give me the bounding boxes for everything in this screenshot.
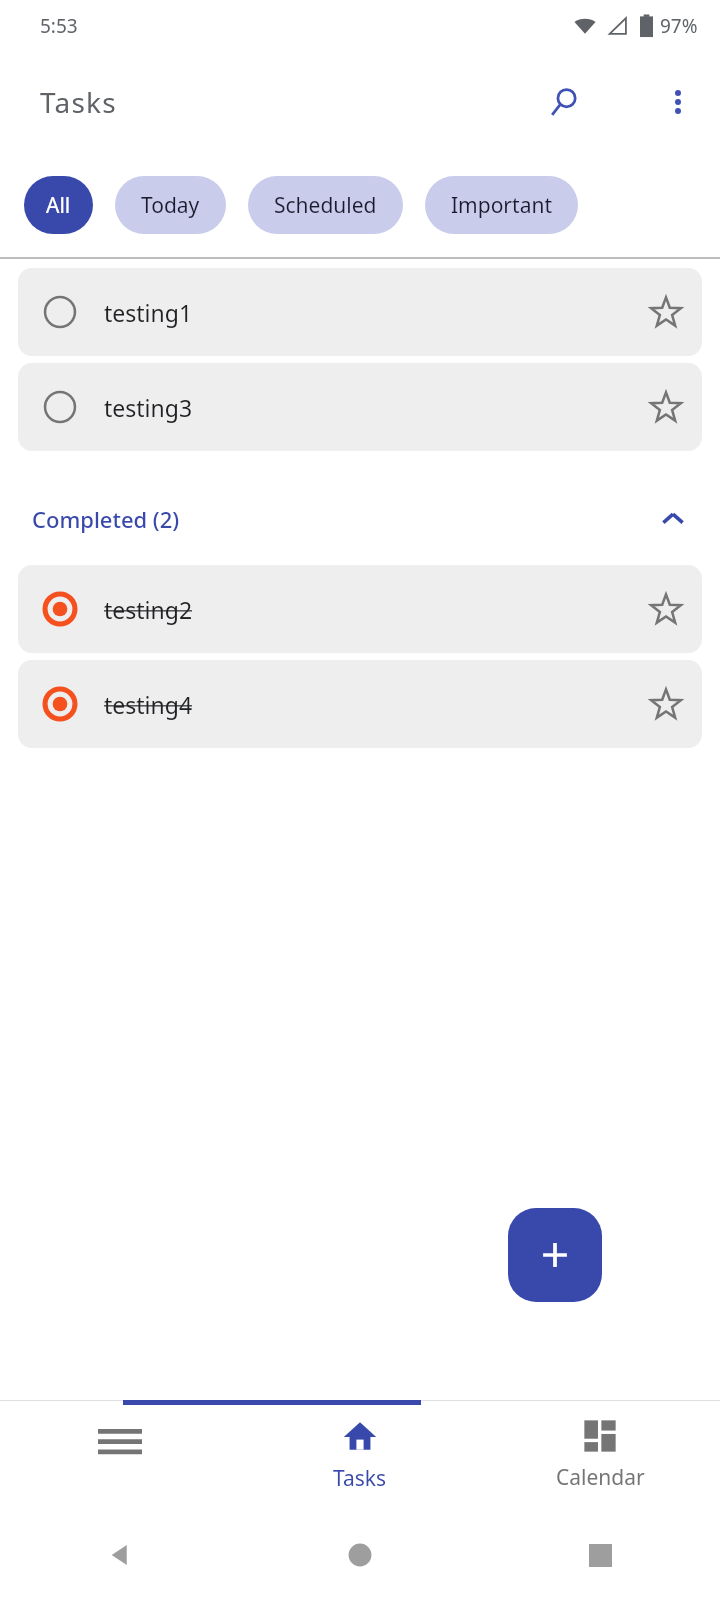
button[interactable]: Search: [536, 74, 592, 130]
button[interactable]: Mark complete: [18, 268, 702, 356]
staticText: Tasks: [40, 83, 117, 121]
button[interactable]: Scheduled: [248, 176, 403, 234]
button[interactable]: More options: [650, 74, 706, 130]
staticText: testing3: [104, 392, 638, 423]
staticText: Calendar: [556, 1463, 645, 1492]
button[interactable]: Important: [425, 176, 578, 234]
button[interactable]: Mark complete: [36, 383, 84, 431]
staticText: Scheduled: [274, 191, 377, 220]
button[interactable]: Star task: [638, 284, 694, 340]
staticText: Completed (2): [32, 504, 180, 534]
staticText: 97%: [660, 13, 698, 39]
staticText: All: [46, 191, 71, 220]
button[interactable]: Mark incomplete: [36, 680, 84, 728]
button[interactable]: Tasks: [240, 1400, 480, 1510]
staticText: testing1: [104, 297, 638, 328]
button[interactable]: Star task: [638, 379, 694, 435]
button[interactable]: Completed (2): [0, 487, 720, 551]
button[interactable]: Mark incomplete: [18, 660, 702, 748]
staticText: testing4: [104, 689, 638, 720]
button[interactable]: All: [24, 176, 93, 234]
staticText: Important: [451, 191, 552, 220]
staticText: testing2: [104, 594, 638, 625]
staticText: Tasks: [333, 1464, 387, 1493]
button[interactable]: Mark complete: [36, 288, 84, 336]
button[interactable]: Add task: [508, 1208, 602, 1302]
button[interactable]: Star task: [638, 676, 694, 732]
button[interactable]: Calendar: [480, 1400, 720, 1510]
button[interactable]: Mark incomplete: [36, 585, 84, 633]
staticText: 5:53: [40, 13, 78, 39]
staticText: Today: [141, 191, 200, 220]
button[interactable]: Today: [115, 176, 226, 234]
button[interactable]: Mark complete: [18, 363, 702, 451]
button[interactable]: Menu: [0, 1400, 240, 1510]
button[interactable]: Mark incomplete: [18, 565, 702, 653]
button[interactable]: Star task: [638, 581, 694, 637]
